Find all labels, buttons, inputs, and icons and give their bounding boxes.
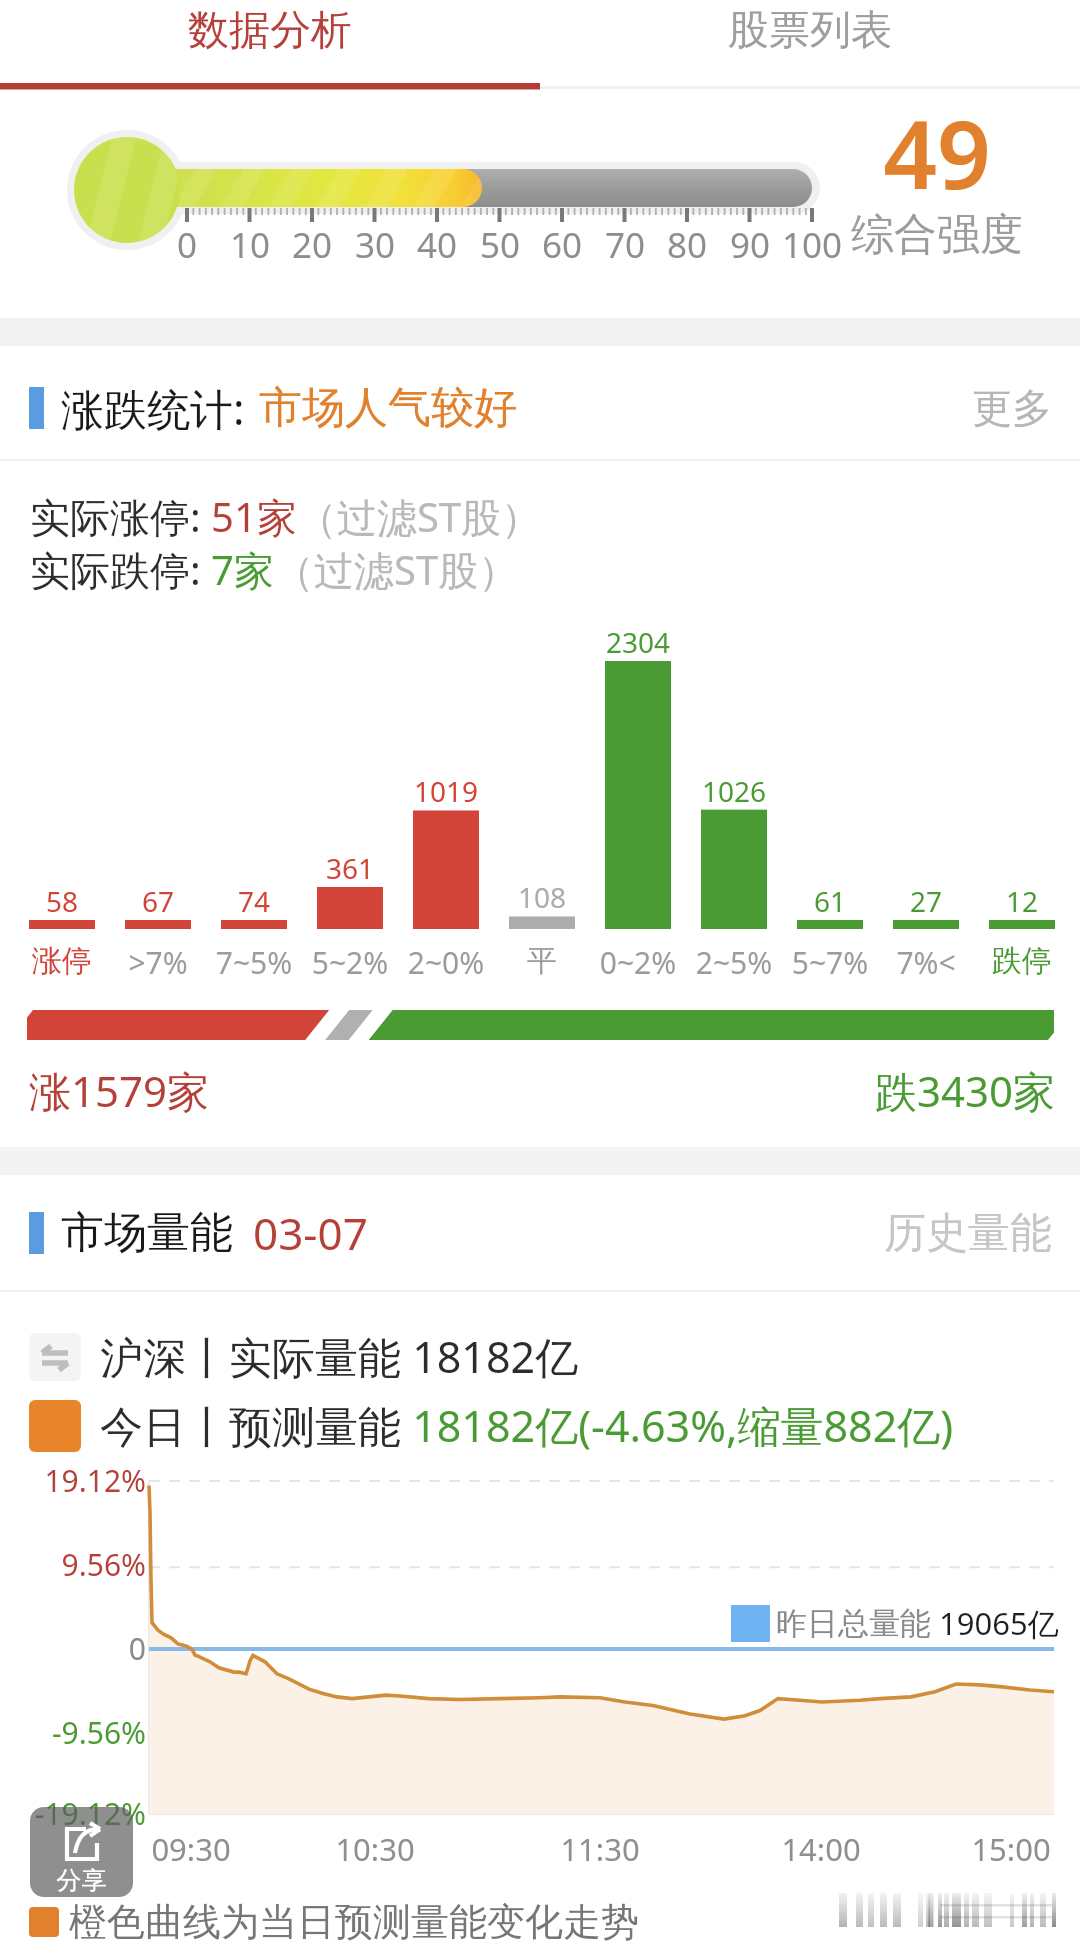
staticText: -19.12% xyxy=(0,1793,146,1834)
staticText: 0 xyxy=(0,1628,146,1669)
staticText: 0 xyxy=(137,221,237,269)
staticText: 61 xyxy=(780,882,880,920)
staticText: 27 xyxy=(876,882,976,920)
staticText: 20 xyxy=(262,221,362,269)
staticText: 12 xyxy=(972,882,1072,920)
staticText: 昨日总量能 xyxy=(776,1604,931,1643)
staticText: 10 xyxy=(200,221,300,269)
staticText: 7%< xyxy=(876,942,976,983)
staticText: 58 xyxy=(12,882,112,920)
staticText: 40 xyxy=(387,221,487,269)
staticText: 涨1579家 xyxy=(29,1062,210,1119)
staticText: 跌停 xyxy=(972,942,1072,980)
button[interactable]: 更多 xyxy=(972,383,1052,433)
staticText: 更多 xyxy=(972,383,1052,433)
staticText: 108 xyxy=(492,878,592,916)
staticText: 市场人气较好 xyxy=(259,381,517,435)
staticText: 平 xyxy=(492,942,592,980)
button[interactable]: 历史量能 xyxy=(884,1207,1052,1260)
staticText: 股票列表 xyxy=(728,5,892,57)
staticText: 60 xyxy=(512,221,612,269)
button[interactable]: 数据分析 xyxy=(0,0,540,62)
staticText: 橙色曲线为当日预测量能变化走势 xyxy=(69,1898,639,1946)
staticText: 今日丨预测量能 18182亿(-4.63%,缩量882亿) xyxy=(100,1396,954,1455)
staticText: 1026 xyxy=(684,772,784,810)
staticText: 0~2% xyxy=(588,942,688,983)
staticText: 50 xyxy=(450,221,550,269)
staticText: 9.56% xyxy=(0,1544,146,1585)
staticText: 19.12% xyxy=(0,1460,146,1501)
staticText: 19065亿 xyxy=(939,1602,1059,1644)
staticText: 实际涨停: 51家（过滤ST股） 实际跌停: 7家（过滤ST股） xyxy=(30,489,542,597)
button[interactable]: 分享 xyxy=(30,1807,133,1897)
staticText: 涨停 xyxy=(12,942,112,980)
staticText: 市场量能 xyxy=(61,1206,233,1260)
staticText: 15:00 xyxy=(931,1828,1080,1870)
staticText: 5~2% xyxy=(300,942,400,983)
staticText: 分享 xyxy=(30,1865,133,1896)
staticText: 1019 xyxy=(396,772,496,810)
staticText: >7% xyxy=(108,942,208,983)
staticText: 361 xyxy=(300,849,400,887)
staticText: 历史量能 xyxy=(884,1207,1052,1260)
staticText: 100 xyxy=(762,221,862,269)
staticText: 跌3430家 xyxy=(580,1062,1055,1119)
button[interactable]: 涨跌统计: xyxy=(0,351,1080,465)
staticText: 涨跌统计: xyxy=(61,379,245,438)
staticText: 5~7% xyxy=(780,942,880,983)
staticText: 90 xyxy=(700,221,800,269)
staticText: 2~0% xyxy=(396,942,496,983)
staticText: 10:30 xyxy=(295,1828,455,1870)
staticText: -9.56% xyxy=(0,1712,146,1753)
staticText: 70 xyxy=(575,221,675,269)
staticText: 11:30 xyxy=(520,1828,680,1870)
staticText: 09:30 xyxy=(111,1828,271,1870)
staticText: 67 xyxy=(108,882,208,920)
staticText: 7~5% xyxy=(204,942,304,983)
staticText: 数据分析 xyxy=(188,5,352,57)
staticText: 2304 xyxy=(588,623,688,661)
staticText: 沪深丨实际量能 18182亿 xyxy=(100,1327,579,1386)
staticText: 综合强度 xyxy=(837,208,1037,262)
staticText: 49 xyxy=(837,89,1037,217)
staticText: 74 xyxy=(204,882,304,920)
staticText: 30 xyxy=(325,221,425,269)
button[interactable]: 市场量能 xyxy=(0,1175,1080,1291)
staticText: 80 xyxy=(637,221,737,269)
staticText: 2~5% xyxy=(684,942,784,983)
staticText: 14:00 xyxy=(741,1828,901,1870)
button[interactable]: 股票列表 xyxy=(540,0,1080,62)
staticText: 03-07 xyxy=(253,1203,368,1263)
